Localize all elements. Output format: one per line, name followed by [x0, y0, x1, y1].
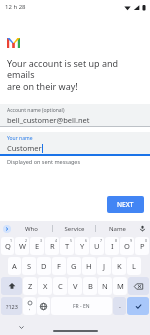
- button[interactable]: J: [97, 257, 111, 275]
- button[interactable]: B: [83, 277, 97, 295]
- button[interactable]: W: [15, 237, 29, 255]
- button[interactable]: H: [82, 257, 96, 275]
- staticText: E: [35, 241, 40, 251]
- button[interactable]: U: [90, 237, 104, 255]
- button[interactable]: N: [98, 277, 112, 295]
- button[interactable]: S: [22, 257, 36, 275]
- staticText: Your name: [7, 135, 33, 142]
- staticText: S: [27, 261, 32, 271]
- staticText: Name: [109, 225, 126, 233]
- button[interactable]: Q: [1, 237, 14, 255]
- button[interactable]: A: [8, 257, 21, 275]
- staticText: K: [117, 261, 122, 271]
- button[interactable]: R: [45, 237, 59, 255]
- staticText: T: [65, 241, 70, 251]
- button[interactable]: More suggestions: [3, 225, 11, 233]
- staticText: C: [58, 281, 63, 291]
- button[interactable]: Home: [53, 330, 98, 332]
- staticText: .: [119, 301, 121, 311]
- staticText: U: [94, 241, 100, 251]
- staticText: V: [73, 281, 78, 291]
- button[interactable]: Emoji: [23, 297, 36, 315]
- staticText: 2: [25, 238, 28, 243]
- staticText: 1: [10, 238, 13, 243]
- staticText: 7: [100, 238, 103, 243]
- staticText: J: [103, 261, 106, 271]
- staticText: F: [57, 261, 61, 271]
- button[interactable]: L: [127, 257, 141, 275]
- staticText: X: [43, 281, 48, 291]
- staticText: Your account is set up and emails are on…: [7, 57, 144, 93]
- staticText: P: [140, 241, 145, 251]
- button[interactable]: Z: [23, 277, 37, 295]
- button[interactable]: Voice input: [138, 224, 147, 233]
- button[interactable]: FR - EN: [51, 297, 112, 315]
- button[interactable]: NEXT: [107, 196, 144, 213]
- staticText: D: [41, 261, 47, 271]
- button[interactable]: Service: [53, 221, 95, 236]
- button[interactable]: C: [53, 277, 67, 295]
- staticText: O: [124, 241, 130, 251]
- staticText: ?123: [6, 303, 18, 310]
- staticText: 4: [55, 238, 58, 243]
- staticText: Displayed on sent messages: [7, 158, 81, 165]
- button[interactable]: Change language: [37, 297, 50, 315]
- staticText: W: [19, 241, 26, 251]
- button[interactable]: Y: [75, 237, 89, 255]
- staticText: 6: [85, 238, 88, 243]
- button[interactable]: O: [120, 237, 134, 255]
- button[interactable]: K: [112, 257, 126, 275]
- staticText: Q: [5, 241, 11, 251]
- staticText: ,: [29, 305, 31, 312]
- button[interactable]: F: [52, 257, 66, 275]
- staticText: N: [102, 281, 108, 291]
- staticText: B: [88, 281, 93, 291]
- button[interactable]: T: [60, 237, 74, 255]
- button[interactable]: G: [67, 257, 81, 275]
- button[interactable]: V: [68, 277, 82, 295]
- staticText: H: [86, 261, 92, 271]
- staticText: 8: [115, 238, 118, 243]
- staticText: Z: [28, 281, 33, 291]
- button[interactable]: I: [105, 237, 119, 255]
- button[interactable]: Backspace: [128, 277, 149, 295]
- button[interactable]: Account name (optional): [0, 104, 150, 126]
- button[interactable]: X: [38, 277, 52, 295]
- button[interactable]: M: [113, 277, 127, 295]
- staticText: Service: [64, 225, 85, 233]
- staticText: 9: [130, 238, 133, 243]
- button[interactable]: Shift: [1, 277, 22, 295]
- button[interactable]: .: [113, 297, 126, 315]
- staticText: 3: [40, 238, 43, 243]
- staticText: A: [12, 261, 17, 271]
- staticText: Account name (optional): [7, 107, 65, 114]
- button[interactable]: ?123: [1, 297, 22, 315]
- staticText: Y: [80, 241, 85, 251]
- staticText: Who: [25, 225, 38, 233]
- staticText: 0: [145, 238, 148, 243]
- staticText: 5: [70, 238, 73, 243]
- button[interactable]: Done: [127, 297, 149, 315]
- staticText: bell_customer@bell.net: [7, 115, 90, 125]
- button[interactable]: P: [135, 237, 149, 255]
- staticText: M: [117, 281, 124, 291]
- button[interactable]: E: [30, 237, 44, 255]
- button[interactable]: Hide keyboard: [17, 323, 25, 331]
- staticText: L: [132, 261, 136, 271]
- button[interactable]: Who: [11, 221, 52, 236]
- staticText: 12 h 28: [5, 3, 26, 11]
- button[interactable]: D: [37, 257, 51, 275]
- staticText: NEXT: [117, 200, 134, 209]
- staticText: Customer: [7, 143, 42, 153]
- staticText: G: [71, 261, 77, 271]
- button[interactable]: Your name: [0, 132, 150, 154]
- button[interactable]: Name: [96, 221, 138, 236]
- staticText: I: [111, 241, 114, 251]
- staticText: R: [50, 241, 55, 251]
- staticText: FR - EN: [73, 303, 90, 310]
